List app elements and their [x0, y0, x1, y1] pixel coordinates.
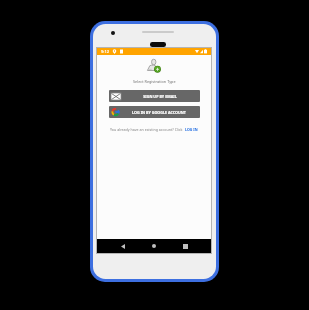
- button[interactable]: Back: [110, 239, 136, 253]
- staticText: SIGN UP BY EMAIL: [143, 94, 177, 99]
- button[interactable]: Home: [141, 239, 167, 253]
- button[interactable]: SIGN UP BY EMAIL: [109, 90, 200, 102]
- staticText: 9:12: [101, 49, 110, 55]
- staticText: LOG IN BY GOOGLE ACCOUNT: [132, 110, 186, 115]
- button[interactable]: Recent apps: [172, 239, 198, 253]
- staticText: You already have an existing account? Cl…: [110, 127, 183, 132]
- button[interactable]: LOG IN: [185, 127, 198, 132]
- staticText: Select Registration Type: [133, 79, 176, 84]
- button[interactable]: LOG IN BY GOOGLE ACCOUNT: [109, 106, 200, 118]
